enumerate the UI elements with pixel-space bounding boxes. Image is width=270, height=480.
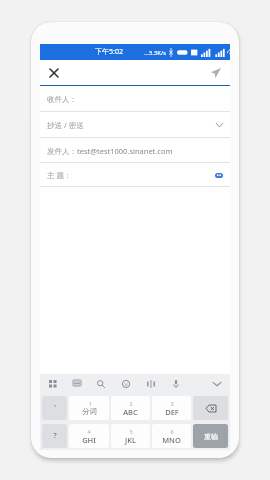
- button[interactable]: ': [42, 396, 67, 420]
- button[interactable]: 重输: [193, 424, 228, 448]
- staticText: MNO: [162, 435, 181, 445]
- button[interactable]: 4: [69, 424, 109, 448]
- button[interactable]: 发件人：: [40, 138, 230, 163]
- staticText: 主 题：: [47, 170, 72, 180]
- button[interactable]: 3: [152, 396, 191, 420]
- button[interactable]: Emoji: [119, 377, 133, 391]
- button[interactable]: Close: [45, 64, 63, 82]
- button[interactable]: 收件人：: [40, 86, 230, 112]
- staticText: 2: [129, 400, 133, 407]
- button[interactable]: 5: [111, 424, 150, 448]
- button[interactable]: Voice input: [169, 377, 183, 391]
- button[interactable]: Settings: [144, 377, 158, 391]
- button[interactable]: 主 题：: [40, 163, 230, 187]
- staticText: ?: [53, 431, 57, 441]
- button[interactable]: 1: [69, 396, 109, 420]
- staticText: ...3.3K/s: [144, 49, 167, 57]
- button[interactable]: Delete: [193, 396, 228, 420]
- staticText: test@test1000.sinanet.com: [77, 146, 173, 156]
- staticText: GHI: [82, 435, 96, 445]
- button[interactable]: 2: [111, 396, 150, 420]
- button[interactable]: Hide keyboard: [210, 377, 224, 391]
- button[interactable]: Attach: [213, 169, 225, 181]
- staticText: 3: [170, 400, 174, 407]
- button[interactable]: ?: [42, 424, 67, 448]
- staticText: 下午5:02: [95, 47, 123, 57]
- button[interactable]: Send: [207, 64, 225, 82]
- button[interactable]: Keyboard layouts: [46, 377, 60, 391]
- staticText: 5: [129, 428, 133, 435]
- staticText: JKL: [125, 435, 136, 445]
- staticText: DEF: [165, 407, 179, 417]
- staticText: 6: [170, 428, 174, 435]
- button[interactable]: Search: [94, 377, 108, 391]
- staticText: 重输: [204, 432, 218, 441]
- staticText: 发件人：: [47, 147, 77, 156]
- staticText: ': [54, 403, 56, 413]
- staticText: ABC: [123, 407, 138, 417]
- staticText: 收件人：: [47, 95, 77, 104]
- button[interactable]: 抄送 / 密送: [40, 112, 230, 138]
- button[interactable]: 6: [152, 424, 191, 448]
- staticText: 抄送 / 密送: [47, 120, 84, 130]
- button[interactable]: Expand: [213, 119, 225, 131]
- staticText: 4: [87, 428, 91, 435]
- staticText: 分词: [82, 407, 97, 416]
- button[interactable]: Full keyboard: [70, 377, 84, 391]
- staticText: 1: [88, 400, 92, 407]
